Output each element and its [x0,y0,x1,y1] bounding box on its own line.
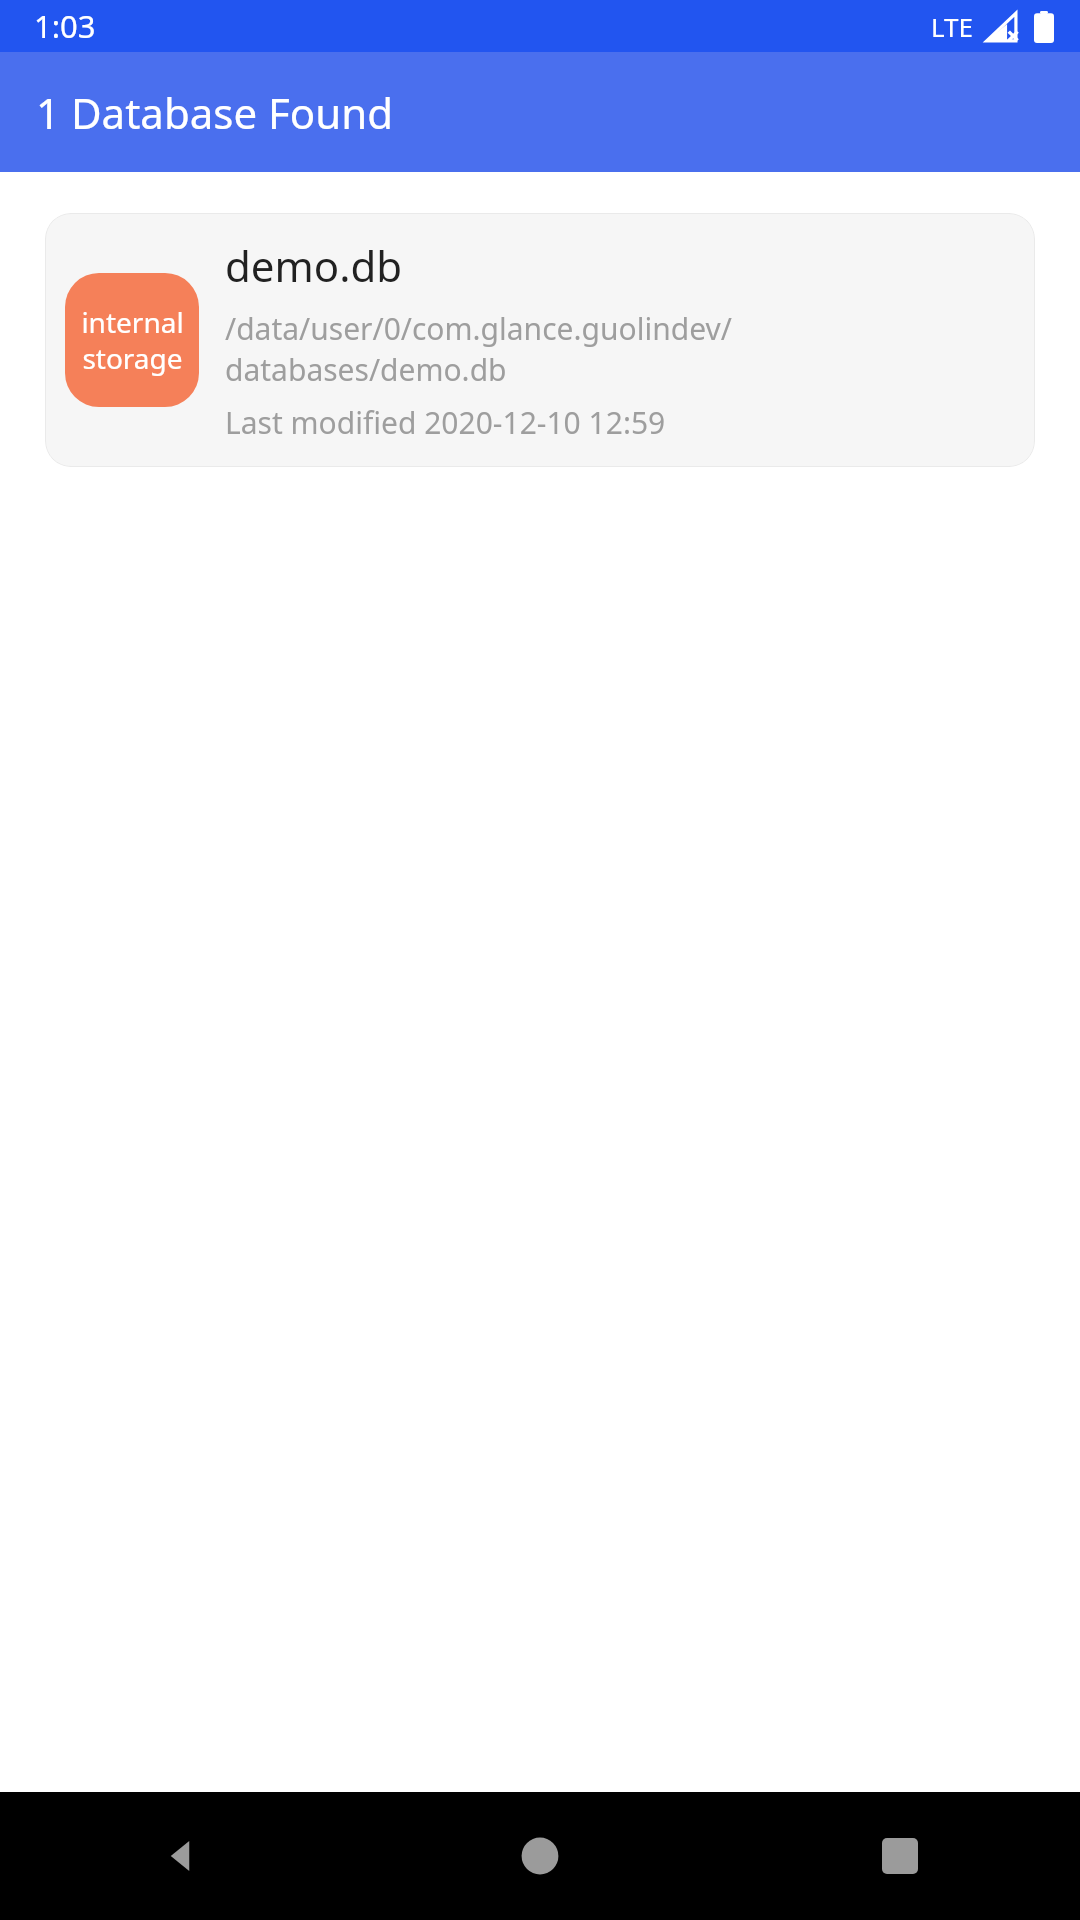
button[interactable]: Home [360,1792,720,1920]
staticText: Last modified 2020-12-10 12:59 [225,402,666,443]
staticText: 1:03 [34,5,96,47]
button[interactable]: Recent apps [720,1792,1080,1920]
button[interactable]: internal storage [45,213,1035,467]
staticText: internal storage [81,303,184,377]
staticText: 1 Database Found [36,84,393,141]
staticText: LTE [931,9,974,44]
button[interactable]: Back [0,1792,360,1920]
staticText: demo.db [225,237,403,294]
staticText: /data/user/0/com.glance.guolindev/ datab… [225,308,732,390]
